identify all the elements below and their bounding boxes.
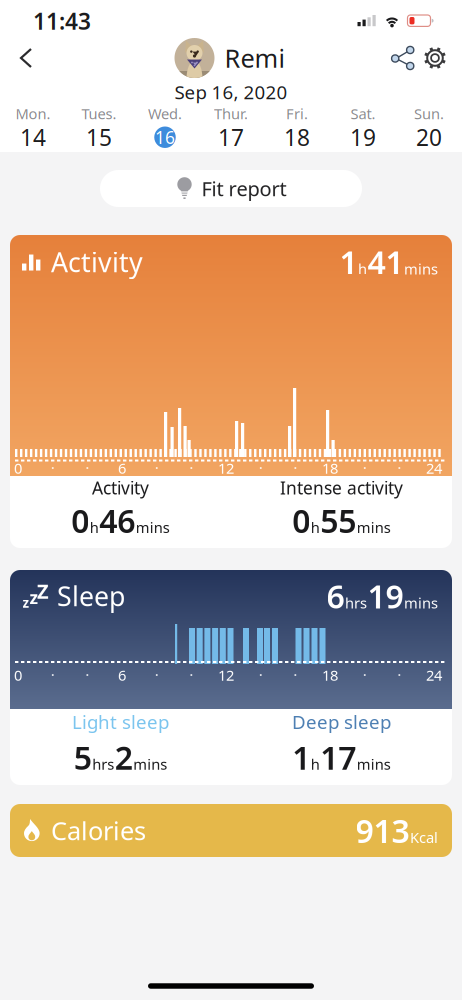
staticText: Sun. <box>414 104 444 123</box>
staticText: mins <box>357 754 391 774</box>
staticText: Tues. <box>81 104 116 123</box>
staticText: mins <box>404 259 438 278</box>
staticText: 19 <box>367 575 403 617</box>
staticText: Sep 16, 2020 <box>174 80 287 104</box>
staticText: 0 <box>14 665 22 685</box>
button[interactable]: Thur. <box>198 104 264 150</box>
staticText: 12 <box>218 458 234 478</box>
staticText: z <box>29 586 38 609</box>
staticText: 17 <box>218 122 244 152</box>
staticText: h <box>358 259 367 278</box>
staticText: Mon. <box>15 104 50 123</box>
staticText: Thur. <box>214 104 248 123</box>
staticText: Wed. <box>148 104 182 123</box>
staticText: 0 <box>292 499 310 542</box>
staticText: 12 <box>218 665 234 685</box>
staticText: Fit report <box>201 175 286 202</box>
staticText: 6 <box>326 575 344 617</box>
button[interactable]: Sun. <box>396 104 462 150</box>
button[interactable] <box>390 45 416 71</box>
staticText: Sleep <box>57 578 125 614</box>
staticText: Deep sleep <box>292 709 391 734</box>
staticText: Z <box>37 578 49 604</box>
staticText: 15 <box>86 122 112 152</box>
staticText: h <box>311 754 320 774</box>
staticText: Kcal <box>410 827 438 847</box>
staticText: 6 <box>118 458 126 478</box>
staticText: hrs <box>92 754 114 774</box>
staticText: 18 <box>284 122 310 152</box>
staticText: 14 <box>20 122 46 152</box>
staticText: Fri. <box>286 104 308 123</box>
staticText: Sat. <box>350 104 375 123</box>
staticText: Activity <box>51 244 143 280</box>
staticText: Calories <box>51 814 146 847</box>
staticText: 24 <box>426 458 442 478</box>
staticText: Remi <box>224 41 285 75</box>
button[interactable]: Sat. <box>330 104 396 150</box>
staticText: 6 <box>118 665 126 685</box>
button[interactable]: Tues. <box>66 104 132 150</box>
staticText: mins <box>404 593 438 612</box>
staticText: Activity <box>92 476 149 499</box>
staticText: h <box>311 517 320 537</box>
staticText: Intense activity <box>280 476 403 499</box>
staticText: mins <box>136 517 170 537</box>
staticText: 41 <box>367 241 403 283</box>
staticText: 11:43 <box>33 6 91 36</box>
button[interactable]: Fit report <box>100 170 362 207</box>
staticText: 19 <box>350 122 376 152</box>
staticText: 17 <box>320 736 356 779</box>
staticText: 16 <box>155 126 175 149</box>
staticText: h <box>90 517 99 537</box>
staticText: z <box>22 594 29 611</box>
button[interactable] <box>15 46 39 70</box>
button[interactable] <box>421 44 449 72</box>
staticText: 18 <box>322 665 338 685</box>
staticText: 5 <box>74 736 92 779</box>
button[interactable]: Calories <box>10 804 452 857</box>
staticText: mins <box>357 517 391 537</box>
staticText: Light sleep <box>72 709 169 734</box>
staticText: 913 <box>355 809 409 852</box>
staticText: hrs <box>345 593 367 612</box>
staticText: 20 <box>416 122 442 152</box>
button[interactable]: Mon. <box>0 104 66 150</box>
staticText: 1 <box>339 241 357 283</box>
staticText: 0 <box>71 499 89 542</box>
staticText: 2 <box>115 736 133 779</box>
button[interactable]: Fri. <box>264 104 330 150</box>
button[interactable]: Wed. <box>132 104 198 150</box>
staticText: 18 <box>322 458 338 478</box>
staticText: 46 <box>99 499 135 542</box>
staticText: 1 <box>292 736 310 779</box>
staticText: 55 <box>320 499 356 542</box>
staticText: 0 <box>14 458 22 478</box>
staticText: mins <box>133 754 167 774</box>
staticText: 24 <box>426 665 442 685</box>
